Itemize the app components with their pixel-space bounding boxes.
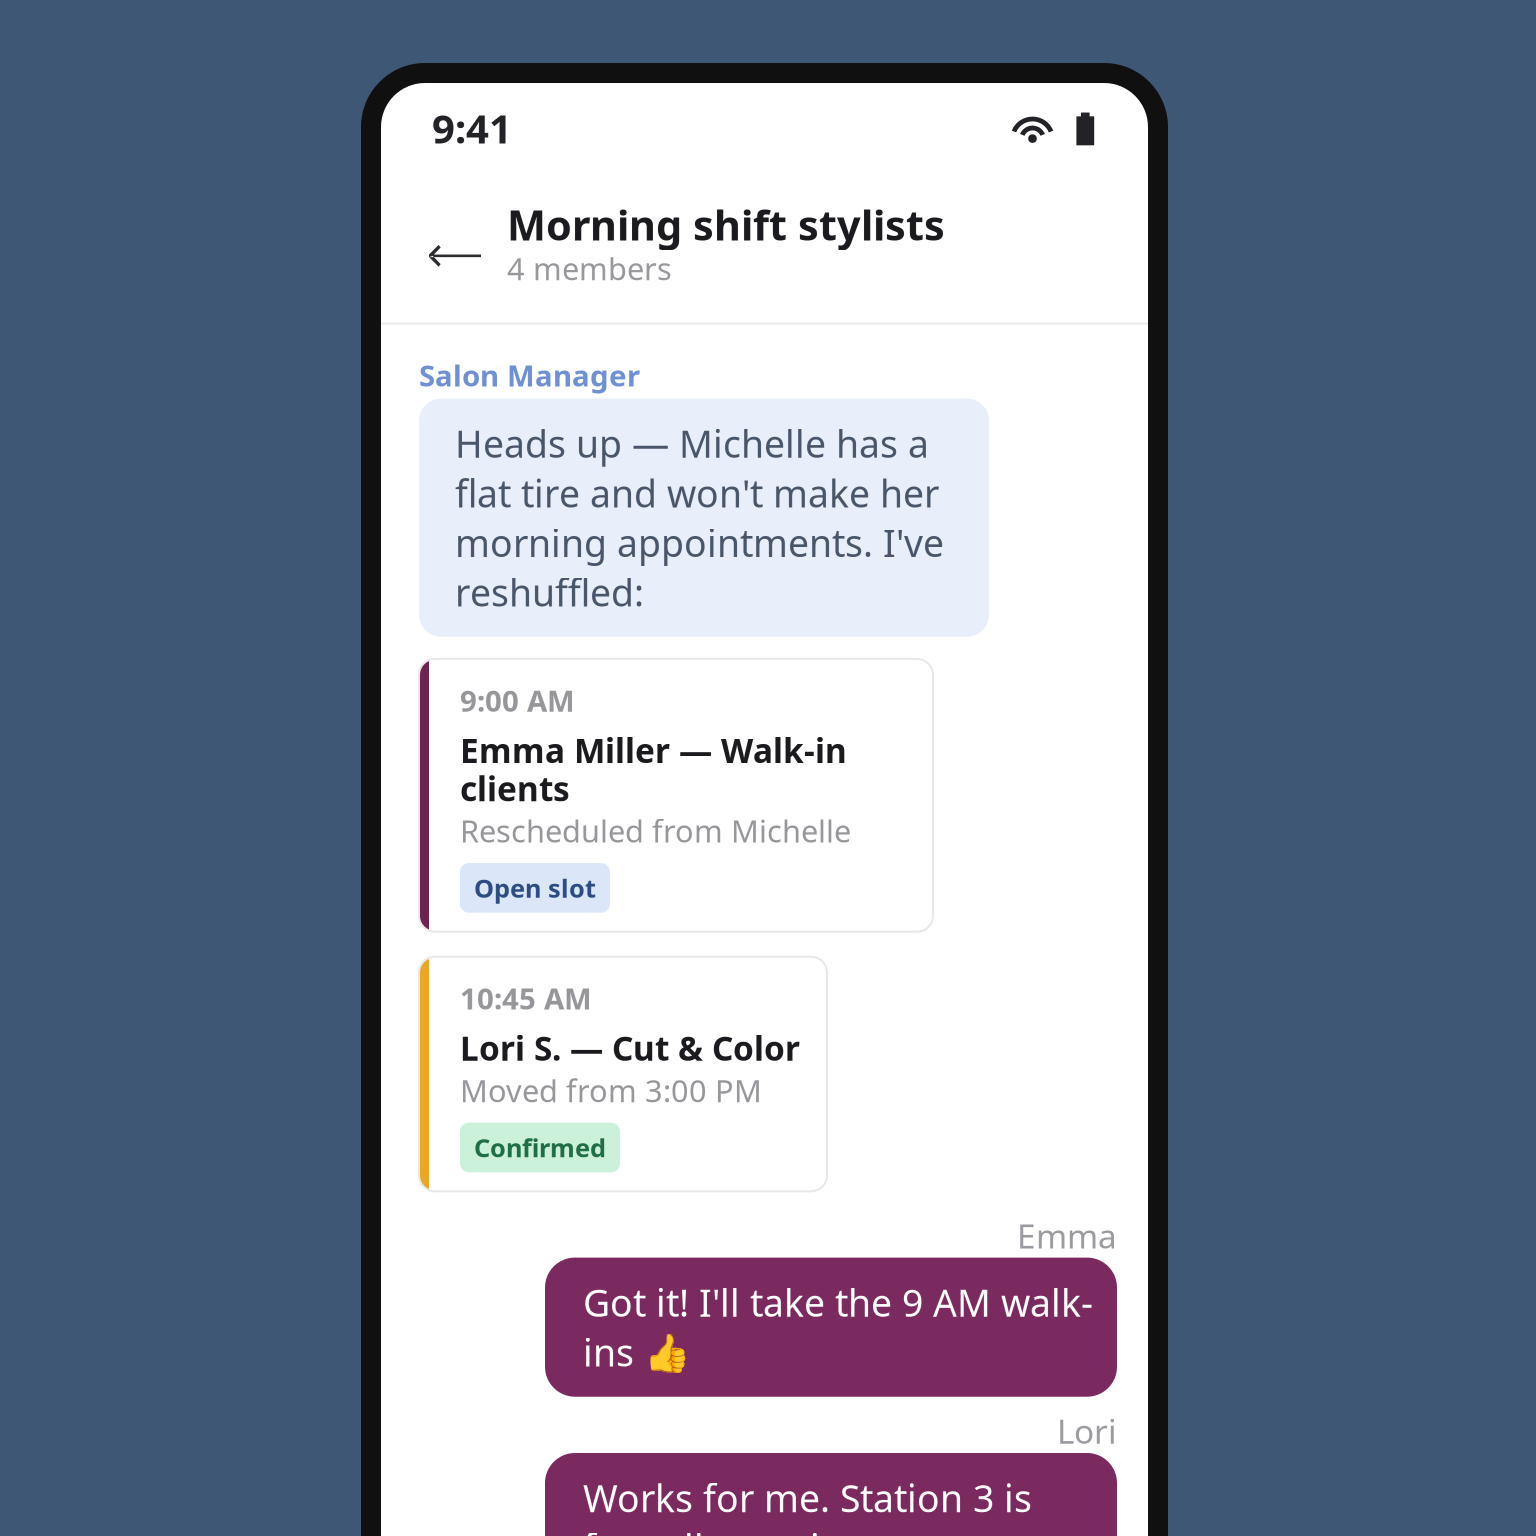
staticText: Rescheduled from Michelle — [460, 810, 851, 851]
staticText: 9:41 — [432, 101, 512, 154]
button[interactable]: Heads up — Michelle has a flat tire and … — [419, 399, 989, 637]
staticText: 10:45 AM — [460, 979, 592, 1018]
button[interactable]: Back — [421, 214, 489, 276]
button[interactable]: 9:00 AM — [419, 659, 933, 932]
button[interactable]: 10:45 AM — [419, 957, 827, 1191]
staticText: Emma — [1017, 1213, 1117, 1258]
staticText: Lori — [1057, 1409, 1117, 1453]
staticText: Lori S. — Cut & Color — [460, 1026, 800, 1070]
staticText: Got it! I'll take the 9 AM walk-ins 👍 — [583, 1278, 1093, 1377]
button[interactable]: Works for me. Station 3 is free all morn… — [545, 1453, 1117, 1536]
button[interactable]: Got it! I'll take the 9 AM walk-ins 👍 — [545, 1258, 1117, 1397]
staticText: Open slot — [474, 871, 596, 905]
staticText: Morning shift stylists — [507, 197, 945, 252]
staticText: Emma Miller — Walk-in clients — [460, 728, 847, 810]
staticText: 4 members — [507, 248, 672, 289]
staticText: Salon Manager — [419, 356, 640, 395]
staticText: Moved from 3:00 PM — [460, 1070, 762, 1111]
staticText: 9:00 AM — [460, 681, 575, 720]
staticText: Heads up — Michelle has a flat tire and … — [455, 419, 944, 617]
staticText: Confirmed — [474, 1131, 606, 1164]
staticText: Works for me. Station 3 is free all morn… — [583, 1473, 1032, 1536]
